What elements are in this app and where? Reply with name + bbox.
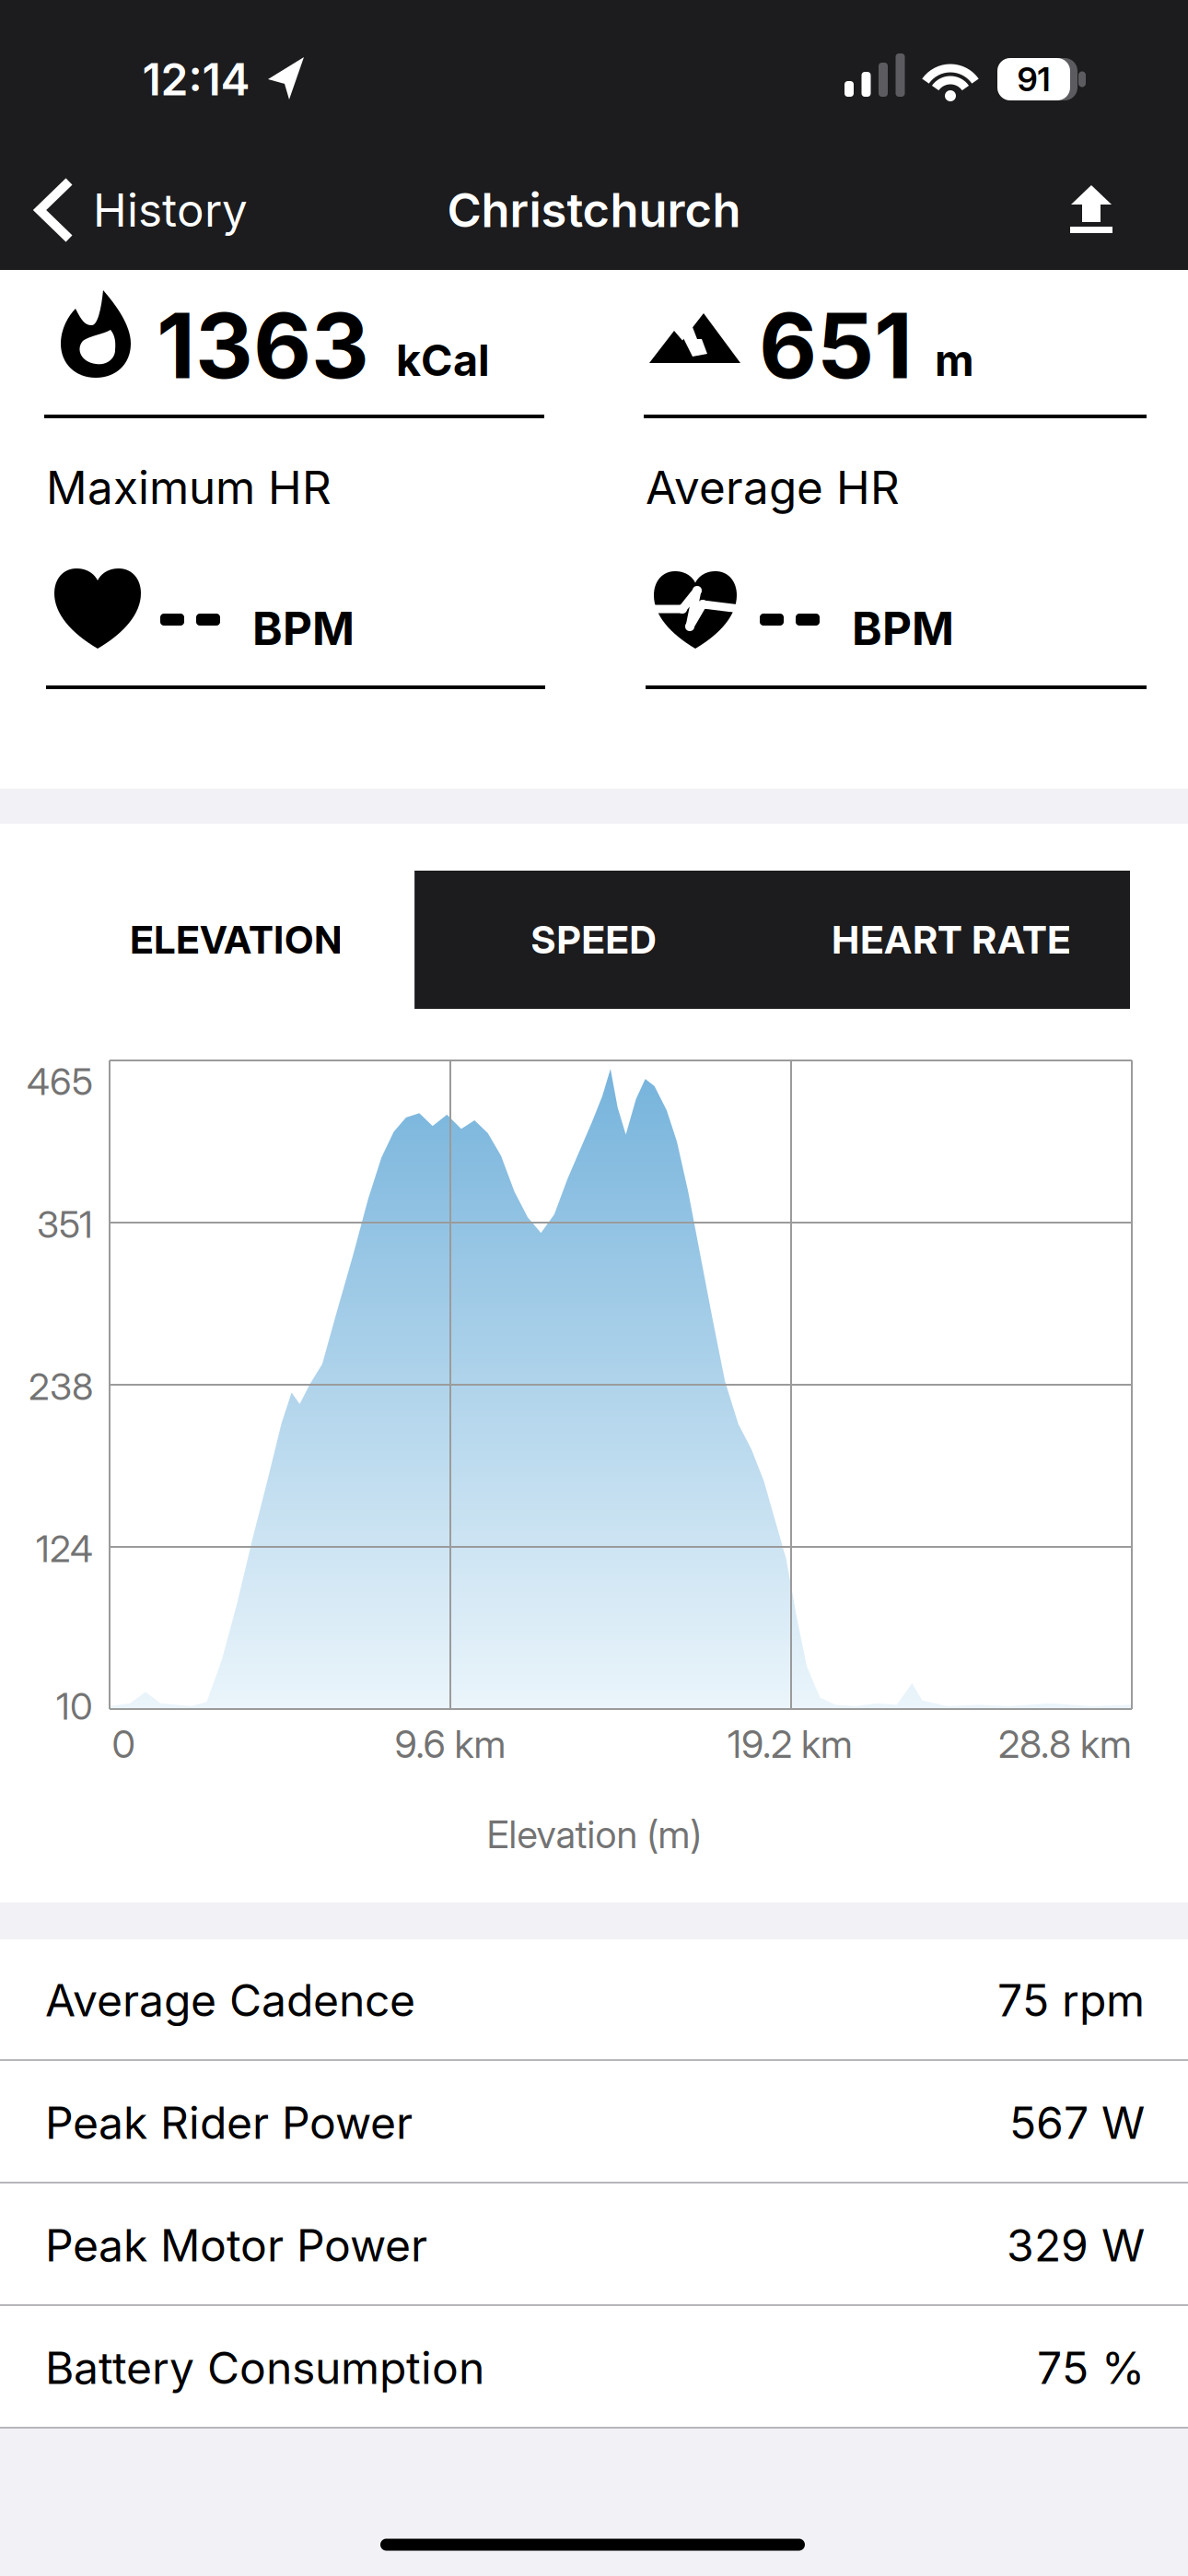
staticText: 1363 <box>157 293 369 398</box>
staticText: 329 W <box>1007 2219 1145 2271</box>
staticText: 124 <box>36 1527 93 1570</box>
staticText: 567 W <box>1009 2097 1145 2149</box>
staticText: 351 <box>37 1203 93 1246</box>
staticText: Christchurch <box>447 183 741 238</box>
button[interactable]: SPEED <box>415 871 772 1009</box>
staticText: SPEED <box>531 917 656 962</box>
staticText: 10 <box>56 1685 93 1728</box>
staticText: 75 % <box>1037 2342 1145 2394</box>
staticText: 91 <box>1017 60 1050 99</box>
staticText: 28.8 km <box>998 1722 1132 1767</box>
staticText: 465 <box>27 1060 93 1103</box>
button[interactable]: ELEVATION <box>57 871 415 1009</box>
staticText: HEART RATE <box>832 917 1070 962</box>
staticText: Peak Rider Power <box>45 2097 413 2149</box>
staticText: 19.2 km <box>728 1722 853 1767</box>
staticText: BPM <box>252 602 355 655</box>
button[interactable]: History <box>40 181 334 239</box>
staticText: 75 rpm <box>997 1974 1145 2026</box>
staticText: Average Cadence <box>45 1974 415 2026</box>
staticText: m <box>935 335 974 386</box>
button[interactable]: HEART RATE <box>772 871 1130 1009</box>
staticText: 651 <box>759 293 913 398</box>
staticText: kCal <box>396 335 490 386</box>
staticText: BPM <box>852 602 954 655</box>
staticText: Average HR <box>646 461 900 514</box>
staticText: Maximum HR <box>46 461 332 514</box>
staticText: Battery Consumption <box>45 2342 484 2394</box>
staticText: ELEVATION <box>130 917 342 962</box>
staticText: Elevation (m) <box>487 1812 701 1857</box>
staticText: 238 <box>29 1365 93 1408</box>
staticText: Peak Motor Power <box>45 2219 427 2271</box>
button[interactable]: Share <box>1070 185 1112 233</box>
staticText: 0 <box>112 1722 135 1767</box>
staticText: History <box>93 183 248 237</box>
staticText: 9.6 km <box>395 1722 506 1767</box>
staticText: 12:14 <box>142 53 250 105</box>
